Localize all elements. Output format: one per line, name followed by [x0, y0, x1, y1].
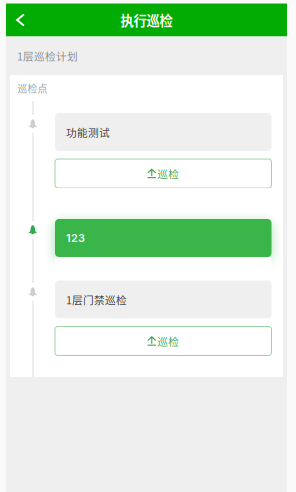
button[interactable]: 返回 — [6, 3, 39, 36]
staticText: 功能测试 — [66, 124, 110, 140]
button[interactable]: 功能测试 — [55, 113, 271, 151]
staticText: 执行巡检 — [120, 10, 172, 30]
button[interactable]: 1层门禁巡检 — [55, 280, 271, 318]
staticText: 1层巡检计划 — [17, 48, 78, 63]
staticText: 1层门禁巡检 — [66, 292, 127, 307]
staticText: 123 — [66, 231, 85, 245]
staticText: 巡检 — [157, 333, 179, 349]
staticText: 巡检点 — [18, 81, 48, 95]
staticText: 巡检 — [157, 166, 179, 181]
button[interactable]: 巡检 — [55, 159, 271, 188]
button[interactable]: 巡检 — [55, 326, 271, 355]
button[interactable]: 123 — [55, 219, 271, 257]
